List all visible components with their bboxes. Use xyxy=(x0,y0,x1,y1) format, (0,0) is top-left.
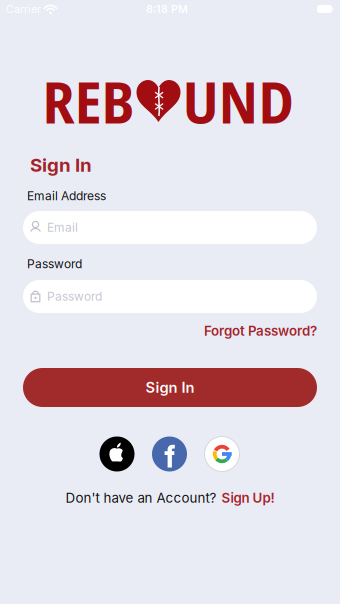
staticText: Password xyxy=(47,289,102,304)
staticText: Sign In xyxy=(30,154,92,176)
staticText: Sign In xyxy=(145,379,194,396)
staticText: Password xyxy=(27,257,82,271)
button[interactable] xyxy=(204,436,239,471)
button[interactable] xyxy=(99,436,134,471)
staticText: Email Address xyxy=(27,189,106,203)
staticText: Forgot Password? xyxy=(204,323,317,339)
staticText: Don't have an Account? xyxy=(65,490,216,506)
button[interactable]: Sign Up! xyxy=(221,490,274,506)
staticText: REB xyxy=(42,61,134,140)
staticText: Carrier xyxy=(6,3,41,15)
button[interactable] xyxy=(152,436,187,471)
staticText: UND xyxy=(182,61,293,140)
button[interactable]: Email xyxy=(23,211,317,244)
button[interactable]: Forgot Password? xyxy=(204,323,317,339)
button[interactable]: Password xyxy=(23,280,317,313)
staticText: Sign Up! xyxy=(221,490,274,506)
staticText: 8:18 PM xyxy=(146,3,188,15)
staticText: Email xyxy=(47,220,78,235)
button[interactable]: Sign In xyxy=(23,368,317,407)
